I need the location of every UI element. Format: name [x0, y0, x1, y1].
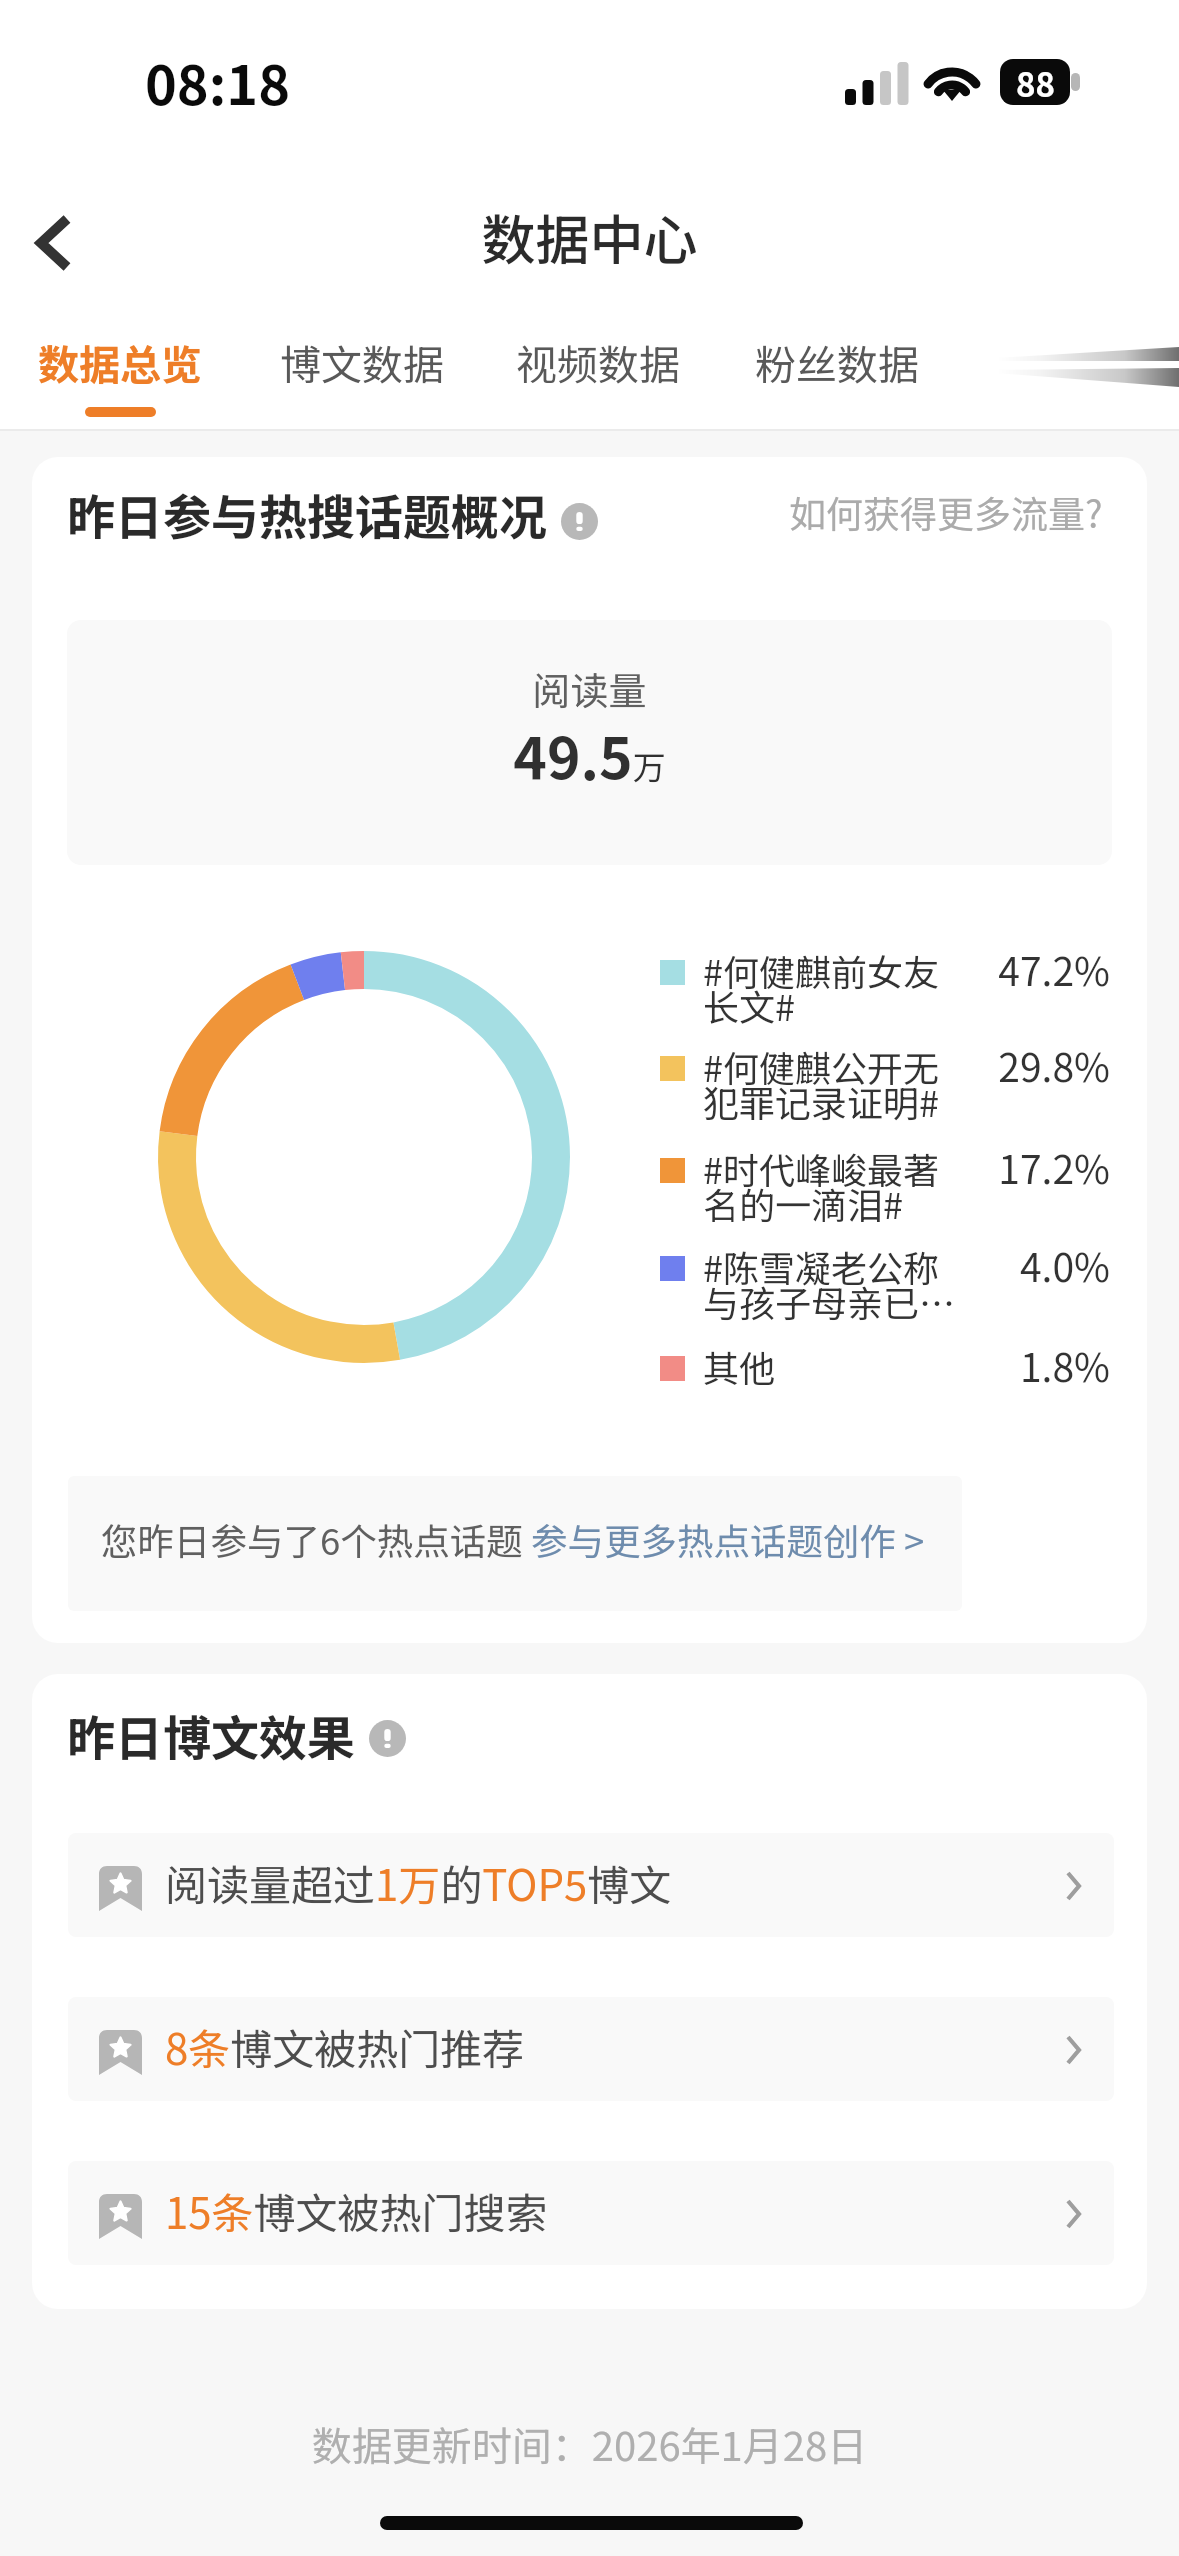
staticText: 88: [1016, 59, 1055, 105]
staticText: 49.5万: [67, 714, 1112, 797]
staticText: 阅读量: [67, 661, 1112, 716]
staticText: #陈雪凝老公称 与孩子母亲已…: [703, 1240, 1003, 1327]
staticText: 您昨日参与了6个热点话题 参与更多热点话题创作 >: [101, 1513, 925, 1566]
button[interactable]: Back: [0, 175, 130, 310]
staticText: 数据中心: [0, 197, 1179, 275]
staticText: 15条博文被热门搜索: [165, 2180, 548, 2241]
button[interactable]: 您昨日参与了6个热点话题 参与更多热点话题创作 >: [68, 1476, 962, 1611]
staticText: #何健麒公开无 犯罪记录证明#: [703, 1040, 1003, 1127]
staticText: 29.8%: [988, 1037, 1110, 1093]
button[interactable]: 博文数据: [280, 324, 446, 422]
button[interactable]: 阅读量超过1万的TOP5博文: [68, 1833, 1114, 1937]
button[interactable]: 8条博文被热门推荐: [68, 1997, 1114, 2101]
staticText: 昨日参与热搜话题概况: [67, 479, 548, 549]
staticText: 1.8%: [988, 1337, 1110, 1393]
button[interactable]: 粉丝数据: [755, 324, 921, 422]
staticText: 8条博文被热门推荐: [165, 2016, 525, 2077]
staticText: 博文数据: [280, 332, 444, 391]
staticText: 阅读量超过1万的TOP5博文: [165, 1852, 672, 1913]
button[interactable]: 如何获得更多流量?: [769, 465, 1117, 559]
staticText: 08:18: [145, 42, 290, 120]
button[interactable]: 数据总览: [38, 324, 204, 422]
staticText: 视频数据: [516, 332, 680, 391]
staticText: 47.2%: [988, 941, 1110, 997]
staticText: 17.2%: [988, 1139, 1110, 1195]
staticText: #时代峰峻最著 名的一滴泪#: [703, 1142, 1003, 1229]
staticText: 粉丝数据: [755, 332, 919, 391]
button[interactable]: 15条博文被热门搜索: [68, 2161, 1114, 2265]
staticText: 其他: [703, 1340, 1003, 1392]
staticText: 如何获得更多流量?: [789, 485, 1103, 539]
staticText: 4.0%: [988, 1237, 1110, 1293]
staticText: 昨日博文效果: [67, 1700, 356, 1770]
staticText: 数据总览: [38, 332, 202, 391]
staticText: 数据更新时间：2026年1月28日: [0, 2415, 1179, 2473]
button[interactable]: 视频数据: [516, 324, 682, 422]
staticText: #何健麒前女友 长文#: [703, 944, 1003, 1031]
